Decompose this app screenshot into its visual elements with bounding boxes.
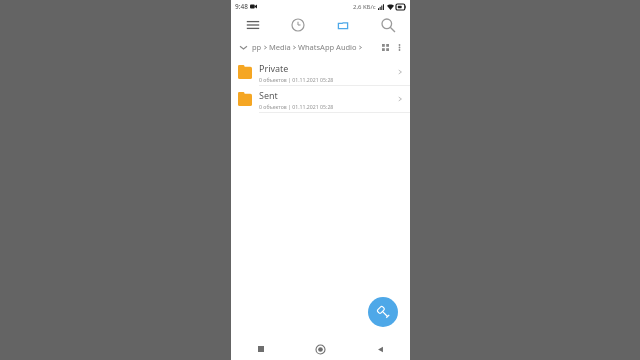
staticText: Private	[259, 62, 289, 74]
button[interactable]: Grid view	[378, 40, 392, 54]
staticText: 0 объектов | 01.11.2021 05:28	[259, 76, 334, 83]
button[interactable]: More options	[392, 40, 406, 54]
staticText: Sent	[259, 89, 278, 101]
button[interactable]: pp	[252, 37, 378, 57]
staticText: 9:48	[235, 2, 248, 11]
button[interactable]: Clean up	[368, 297, 398, 327]
staticText: pp	[252, 42, 262, 52]
staticText: Media	[269, 42, 291, 52]
button[interactable]: Recent	[275, 13, 320, 37]
button[interactable]: Search	[365, 13, 410, 37]
button[interactable]: Private	[231, 59, 410, 86]
staticText: 0 объектов | 01.11.2021 05:28	[259, 103, 334, 110]
staticText: 2,6 KБ/c	[353, 3, 376, 11]
staticText: WhatsApp Audio	[298, 42, 357, 52]
button[interactable]: Recents	[231, 338, 290, 360]
button[interactable]: Back	[350, 338, 410, 360]
button[interactable]: Home	[290, 338, 350, 360]
button[interactable]: Sent	[231, 86, 410, 113]
button[interactable]: Menu	[231, 13, 275, 37]
button[interactable]: Collapse	[237, 41, 249, 53]
button[interactable]: Files	[320, 13, 365, 37]
